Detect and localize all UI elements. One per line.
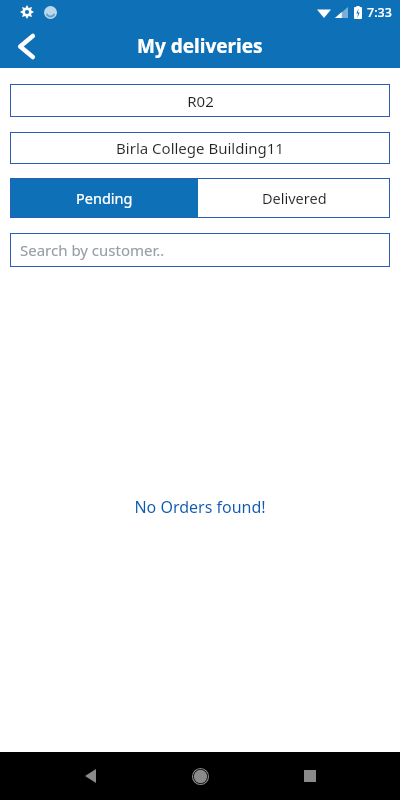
- staticText: No Orders found!: [134, 496, 266, 518]
- button[interactable]: Birla College Building11: [10, 132, 390, 164]
- staticText: Pending: [76, 188, 133, 208]
- staticText: My deliveries: [137, 33, 263, 59]
- staticText: Delivered: [262, 188, 327, 208]
- button[interactable]: Delivered: [198, 178, 390, 218]
- staticText: R02: [187, 91, 214, 111]
- button[interactable]: Back: [70, 756, 110, 796]
- staticText: Search by customer..: [20, 240, 165, 260]
- button[interactable]: Pending: [10, 178, 198, 218]
- staticText: 7:33: [367, 4, 392, 21]
- button[interactable]: Search by customer..: [10, 233, 390, 267]
- button[interactable]: Back: [6, 26, 46, 66]
- button[interactable]: Recent apps: [290, 756, 330, 796]
- button[interactable]: R02: [10, 84, 390, 117]
- staticText: Birla College Building11: [116, 138, 284, 158]
- button[interactable]: Home: [178, 754, 222, 798]
